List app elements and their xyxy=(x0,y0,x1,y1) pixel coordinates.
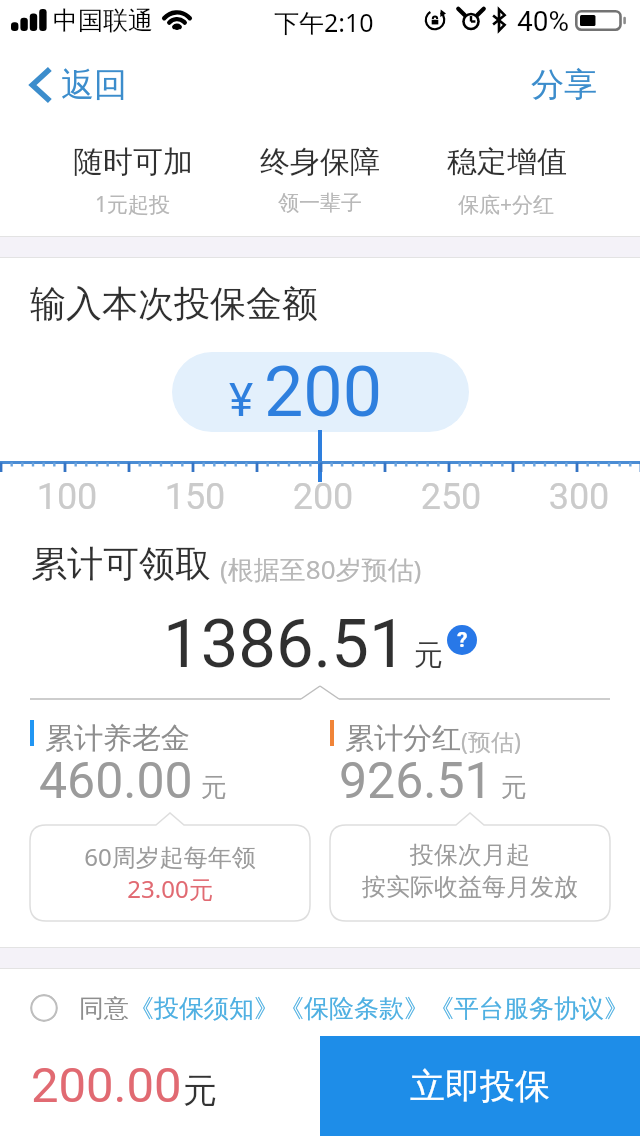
staticText: 终身保障 xyxy=(260,143,380,181)
staticText: 下午2:10 xyxy=(274,5,374,39)
staticText: 元 xyxy=(183,1069,217,1112)
button[interactable]: 立即投保 xyxy=(320,1036,640,1136)
button[interactable]: 投保次月起 xyxy=(330,813,610,921)
staticText: 保底+分红 xyxy=(458,190,555,219)
staticText: 立即投保 xyxy=(410,1064,550,1108)
staticText: 随时可加 xyxy=(73,143,193,181)
button[interactable]: 同意协议 xyxy=(30,994,58,1022)
staticText: (预估) xyxy=(461,725,521,756)
button[interactable]: 《投保须知》 xyxy=(129,993,279,1024)
button[interactable]: 《平台服务协议》 xyxy=(429,993,629,1024)
staticText: 40% xyxy=(517,5,569,38)
staticText: 150 xyxy=(145,476,245,518)
staticText: 累计可领取 xyxy=(31,541,211,586)
staticText: 投保次月起 xyxy=(330,840,610,870)
staticText: 累计分红 xyxy=(345,720,461,757)
button[interactable]: ¥ xyxy=(172,352,469,432)
staticText: ? xyxy=(457,628,468,653)
staticText: 200.00 xyxy=(31,1057,182,1114)
staticText: (根据至80岁预估) xyxy=(220,551,422,587)
staticText: 1元起投 xyxy=(95,190,171,219)
staticText: 200 xyxy=(273,476,373,518)
staticText: 中国联通 xyxy=(53,5,153,36)
staticText: 60周岁起每年领 xyxy=(30,840,310,873)
staticText: 200 xyxy=(264,352,383,431)
staticText: 元 xyxy=(414,637,443,674)
staticText: 同意 xyxy=(79,993,129,1024)
staticText: 250 xyxy=(401,476,501,518)
staticText: 元 xyxy=(201,771,227,804)
staticText: 460.00 xyxy=(39,752,193,811)
button[interactable]: 说明 xyxy=(447,625,477,655)
staticText: ¥ xyxy=(229,373,254,427)
staticText: 领一辈子 xyxy=(278,190,362,216)
staticText: 100 xyxy=(17,476,117,518)
button[interactable]: 分享 xyxy=(527,60,601,110)
staticText: 累计养老金 xyxy=(45,720,190,757)
staticText: 300 xyxy=(529,476,629,518)
button[interactable]: 返回 xyxy=(24,60,131,110)
staticText: 23.00元 xyxy=(30,872,310,905)
button[interactable]: 《保险条款》 xyxy=(279,993,429,1024)
staticText: 按实际收益每月发放 xyxy=(330,872,610,902)
staticText: 稳定增值 xyxy=(447,143,567,181)
button[interactable]: 60周岁起每年领 xyxy=(30,813,310,921)
staticText: 元 xyxy=(501,771,527,804)
staticText: 输入本次投保金额 xyxy=(30,281,318,326)
staticText: 1386.51 xyxy=(163,605,407,684)
staticText: 926.51 xyxy=(339,752,493,811)
staticText: 返回 xyxy=(61,64,127,106)
staticText: 分享 xyxy=(531,64,597,106)
